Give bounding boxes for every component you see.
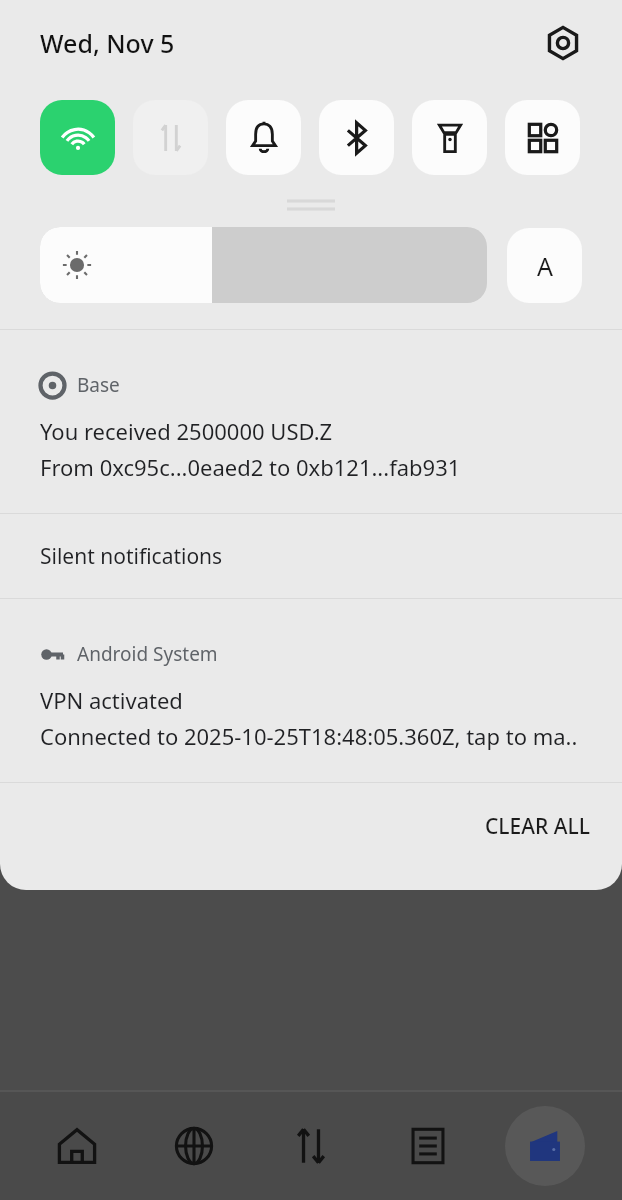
staticText: From 0xc95c...0eaed2 to 0xb121...fab931 — [40, 452, 461, 482]
staticText: Base — [77, 372, 120, 398]
button[interactable]: Mobile data — [133, 100, 208, 175]
button[interactable]: Wi-Fi — [40, 100, 115, 175]
button[interactable]: Home — [37, 1106, 117, 1186]
button[interactable]: Brightness — [40, 227, 487, 303]
staticText: A — [537, 249, 553, 283]
button[interactable]: Android System — [0, 599, 622, 782]
button[interactable]: Do not disturb — [226, 100, 301, 175]
staticText: Wed, Nov 5 — [40, 26, 175, 60]
button[interactable]: Bluetooth — [319, 100, 394, 175]
staticText: Connected to 2025-10-25T18:48:05.360Z, t… — [40, 721, 578, 751]
button[interactable]: Wallet — [505, 1106, 585, 1186]
staticText: CLEAR ALL — [485, 812, 590, 841]
button[interactable]: Silent notifications — [0, 514, 622, 598]
button[interactable]: A — [507, 228, 582, 303]
staticText: Silent notifications — [40, 542, 223, 571]
staticText: Android System — [77, 641, 218, 667]
button[interactable]: Base — [0, 330, 622, 513]
staticText: VPN activated — [40, 685, 183, 715]
button[interactable]: CLEAR ALL — [453, 794, 622, 859]
button[interactable]: List — [388, 1106, 468, 1186]
button[interactable]: Settings — [540, 20, 586, 66]
button[interactable]: All tiles — [505, 100, 580, 175]
button[interactable]: Flashlight — [412, 100, 487, 175]
button[interactable]: Browser — [154, 1106, 234, 1186]
staticText: You received 2500000 USD.Z — [40, 416, 333, 446]
button[interactable]: Transfer — [271, 1106, 351, 1186]
